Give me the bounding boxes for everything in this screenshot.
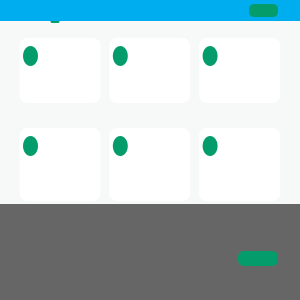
button[interactable]: Item [109, 38, 190, 103]
button[interactable]: Item [199, 38, 280, 103]
button[interactable]: Item [19, 128, 100, 201]
button[interactable]: Action [249, 0, 300, 21]
button[interactable]: Item [199, 128, 280, 201]
button[interactable]: Item [19, 38, 100, 103]
button[interactable]: Item [109, 128, 190, 201]
button[interactable]: Continue [238, 204, 300, 300]
